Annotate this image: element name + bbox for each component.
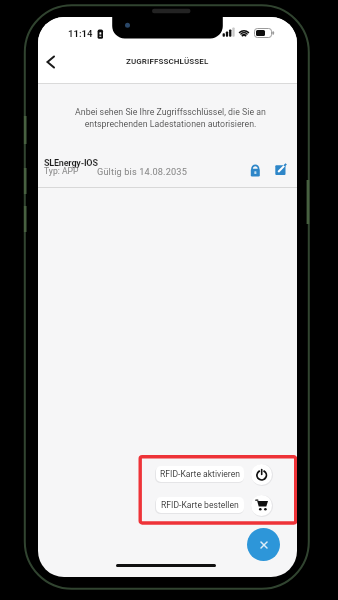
staticText: Anbei sehen Sie Ihre Zugriffsschlüssel, … (41, 107, 297, 129)
staticText: Typ: APP (44, 166, 79, 176)
button[interactable] (251, 495, 272, 516)
button[interactable]: RFID-Karte aktivieren (156, 466, 244, 482)
staticText: RFID-Karte aktivieren (160, 469, 240, 479)
button[interactable] (40, 50, 66, 74)
button[interactable] (38, 147, 297, 188)
button[interactable] (251, 464, 272, 485)
staticText: Gültig bis 14.08.2035 (97, 166, 187, 177)
staticText: 11:14 (68, 28, 93, 39)
staticText: ZUGRIFFSSCHLÜSSEL (126, 57, 209, 66)
button[interactable]: RFID-Karte bestellen (156, 497, 244, 513)
button[interactable] (246, 160, 265, 182)
staticText: SLEnergy-IOS (44, 158, 98, 169)
button[interactable] (271, 159, 291, 181)
staticText: RFID-Karte bestellen (161, 500, 239, 510)
button[interactable] (247, 528, 280, 561)
